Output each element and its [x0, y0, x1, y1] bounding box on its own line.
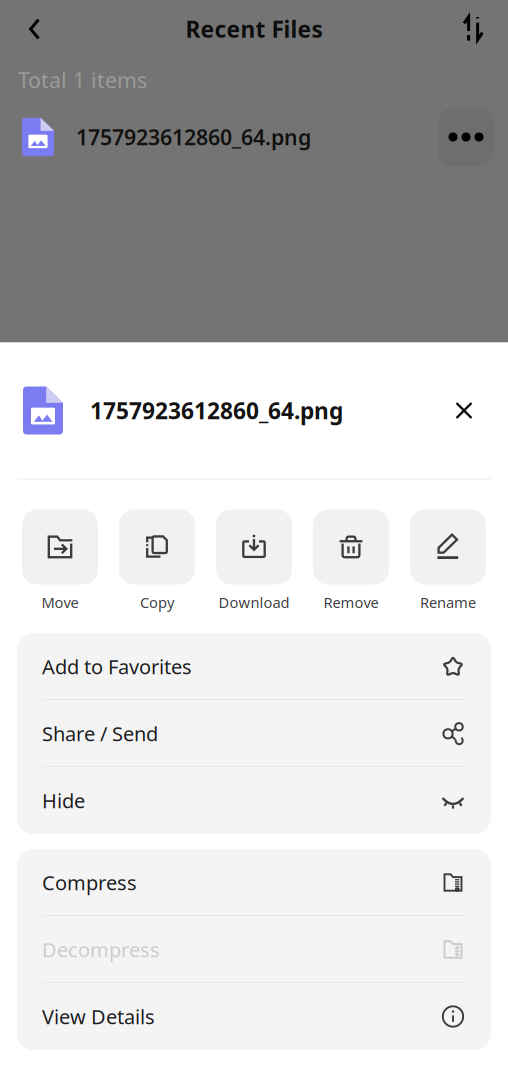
button[interactable]: Back [13, 7, 57, 51]
staticText: 1757923612860_64.png [76, 123, 311, 151]
staticText: Download [218, 592, 289, 612]
staticText: Compress [42, 869, 137, 896]
staticText: Remove [323, 592, 378, 612]
button[interactable]: Remove [313, 509, 389, 612]
button[interactable]: Rename [410, 509, 486, 612]
button[interactable]: Move [22, 509, 98, 612]
button[interactable]: Sort [451, 7, 495, 51]
button[interactable]: Compress [17, 849, 491, 916]
button[interactable]: Share / Send [17, 700, 491, 767]
staticText: Share / Send [42, 720, 158, 747]
button[interactable]: More options [438, 108, 494, 166]
staticText: Copy [140, 592, 174, 612]
staticText: Move [41, 592, 78, 612]
button[interactable]: Copy [119, 509, 195, 612]
staticText: Add to Favorites [42, 653, 192, 680]
staticText: Hide [42, 787, 85, 814]
staticText: Recent Files [185, 14, 322, 44]
staticText: Rename [420, 592, 476, 612]
staticText: View Details [42, 1003, 155, 1030]
staticText: Decompress [42, 936, 160, 963]
staticText: Total 1 items [18, 66, 147, 94]
button[interactable]: Add to Favorites [17, 633, 491, 700]
button[interactable]: Decompress [17, 916, 491, 983]
button[interactable]: View Details [17, 983, 491, 1050]
button[interactable]: Hide [17, 767, 491, 834]
button[interactable]: Close [444, 390, 484, 430]
staticText: 1757923612860_64.png [90, 395, 343, 426]
button[interactable]: Download [216, 509, 292, 612]
